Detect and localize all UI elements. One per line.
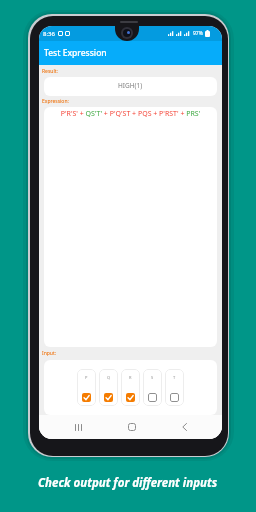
button[interactable]: T [165, 369, 184, 406]
button[interactable]: S [143, 369, 162, 406]
staticText: 97% [193, 30, 203, 37]
staticText: Q [107, 375, 111, 380]
button[interactable] [128, 423, 136, 431]
staticText: S [151, 375, 154, 380]
button[interactable]: R [121, 369, 140, 406]
staticText: R [129, 375, 132, 380]
button[interactable] [182, 423, 187, 431]
staticText: P'R'S' + QS'T' + P'Q'ST + PQS + P'RST' +… [44, 109, 217, 119]
staticText: HIGH(1) [118, 81, 143, 90]
button[interactable]: Q [99, 369, 118, 406]
staticText: 8:36 [43, 30, 55, 38]
staticText: P [85, 375, 88, 380]
staticText: Test Expression [44, 47, 107, 59]
staticText: Result: [42, 68, 58, 75]
staticText: Expression: [42, 98, 69, 105]
staticText: Check output for different inputs [38, 475, 218, 491]
staticText: T [173, 375, 176, 380]
button[interactable]: P [77, 369, 96, 406]
staticText: Input: [42, 350, 57, 357]
button[interactable] [75, 424, 82, 431]
button[interactable]: Test Expression [39, 41, 222, 65]
